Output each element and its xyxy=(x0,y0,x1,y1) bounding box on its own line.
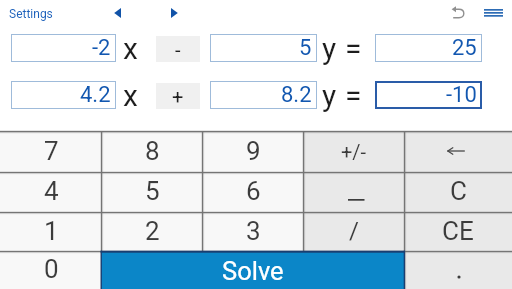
staticText: 4 xyxy=(44,176,59,206)
staticText: y xyxy=(322,31,337,66)
staticText: 5 xyxy=(299,35,312,61)
staticText: = xyxy=(345,31,362,66)
staticText: C xyxy=(450,176,467,206)
staticText: - xyxy=(175,38,181,61)
staticText: 6 xyxy=(246,176,261,206)
staticText: x xyxy=(123,78,138,113)
staticText: Solve xyxy=(222,256,284,286)
staticText: 1 xyxy=(44,216,59,246)
staticText: x xyxy=(123,31,138,66)
staticText: + xyxy=(172,85,184,108)
staticText: = xyxy=(345,78,362,113)
staticText: 2 xyxy=(145,216,160,246)
staticText: 3 xyxy=(246,216,261,246)
staticText: 7 xyxy=(44,136,59,166)
staticText: y xyxy=(322,78,337,113)
staticText: CE xyxy=(442,216,474,246)
staticText: 8 xyxy=(145,136,160,166)
staticText: -2 xyxy=(92,35,111,61)
staticText: +/- xyxy=(341,140,367,163)
staticText: 25 xyxy=(452,35,477,61)
staticText: 4.2 xyxy=(80,82,111,108)
staticText: -10 xyxy=(446,82,477,108)
staticText: Settings xyxy=(9,7,53,21)
staticText: / xyxy=(349,217,359,245)
staticText: 5 xyxy=(145,176,160,206)
staticText: 8.2 xyxy=(281,82,312,108)
staticText: 9 xyxy=(246,136,261,166)
staticText: 0 xyxy=(44,254,59,284)
